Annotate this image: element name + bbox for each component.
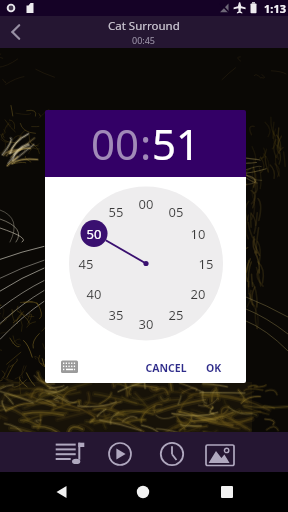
staticText: 00: [91, 115, 140, 172]
staticText: 1:13: [264, 1, 286, 16]
staticText: 51: [152, 115, 201, 172]
button[interactable]: [129, 478, 157, 506]
staticText: 00:45: [132, 34, 156, 46]
staticText: Cat Surround: [108, 18, 180, 34]
button[interactable]: [201, 436, 239, 474]
button[interactable]: [153, 435, 191, 473]
button[interactable]: [213, 478, 241, 506]
staticText: :: [140, 115, 152, 172]
button[interactable]: [51, 435, 89, 473]
button[interactable]: [57, 356, 83, 378]
button[interactable]: [48, 478, 76, 506]
button[interactable]: [144, 356, 190, 378]
button[interactable]: [197, 356, 231, 378]
button[interactable]: [0, 16, 32, 48]
button[interactable]: [101, 435, 139, 473]
